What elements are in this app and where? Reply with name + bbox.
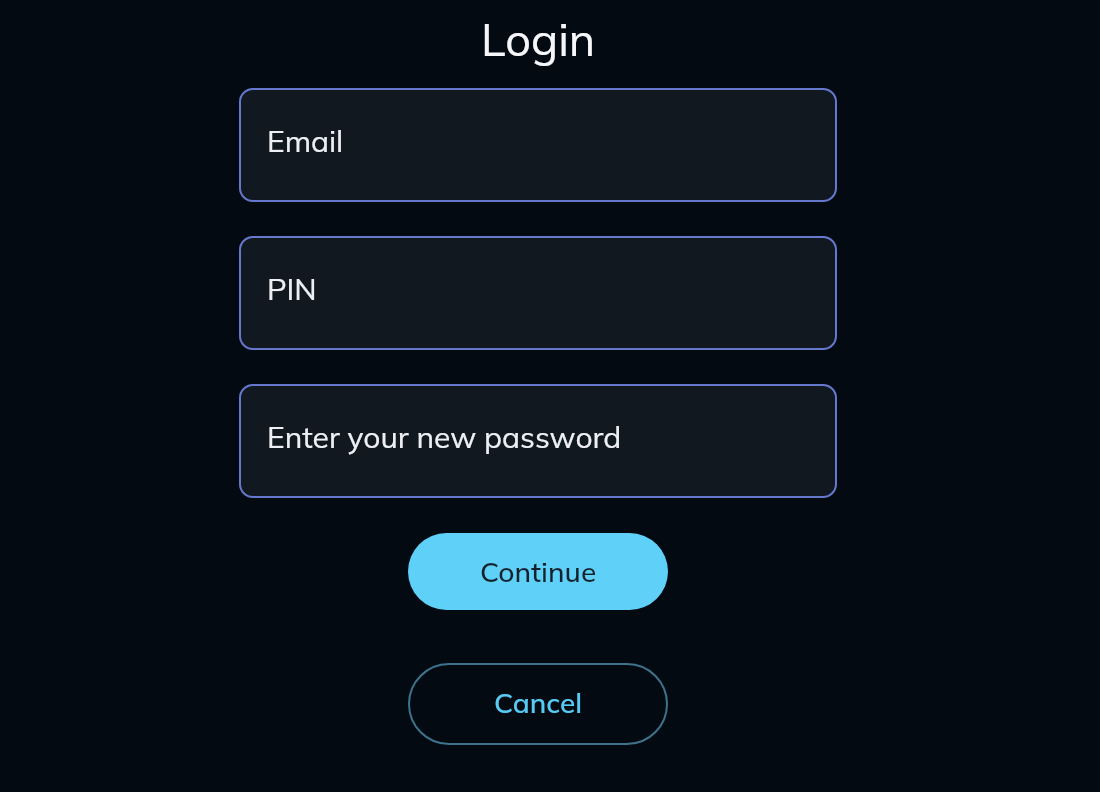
button[interactable]: Email	[239, 88, 837, 202]
button[interactable]: PIN	[239, 236, 837, 350]
staticText: Email	[267, 122, 344, 160]
staticText: Cancel	[494, 685, 583, 720]
staticText: Continue	[480, 554, 597, 589]
staticText: PIN	[267, 270, 317, 308]
button[interactable]: Continue	[408, 533, 668, 610]
staticText: Enter your new password	[267, 418, 622, 456]
staticText: Login	[481, 11, 596, 67]
button[interactable]: Cancel	[408, 663, 668, 745]
button[interactable]: Enter your new password	[239, 384, 837, 498]
